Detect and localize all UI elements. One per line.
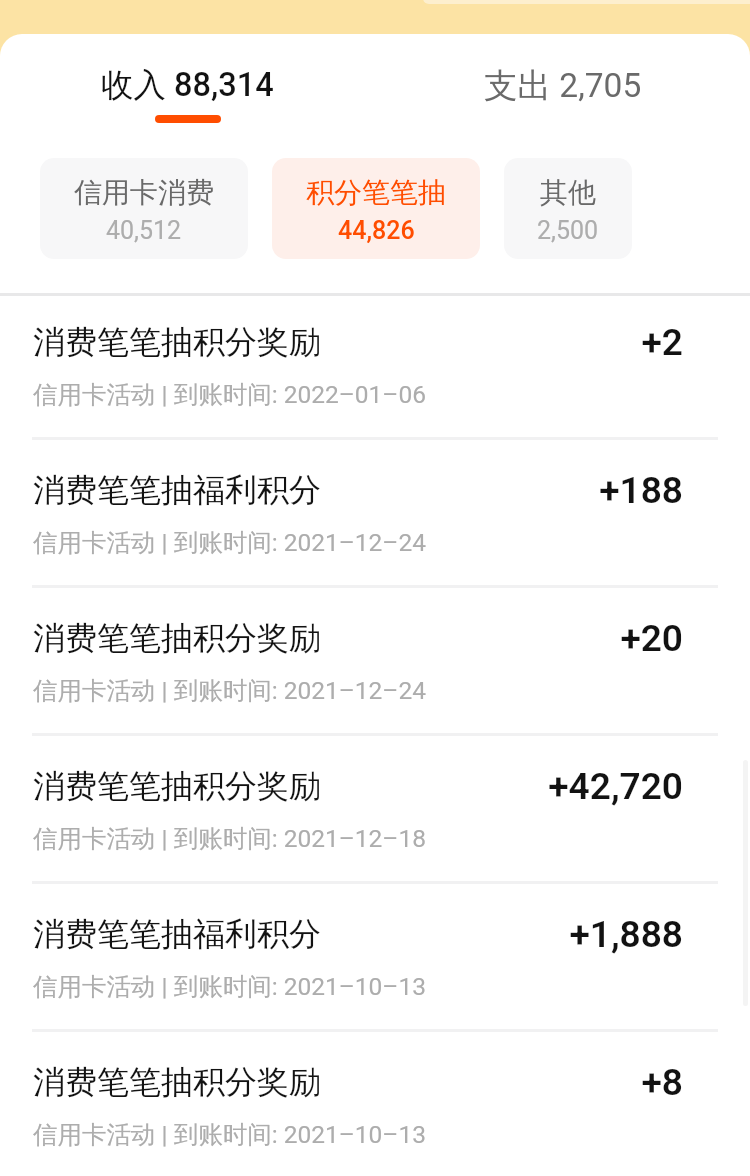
button[interactable]: 积分笔笔抽 [272,158,480,259]
staticText: +42,720 [548,765,683,808]
staticText: 信用卡活动 | 到账时间: 2021–12–24 [33,675,426,706]
staticText: 44,826 [338,216,415,245]
button[interactable]: 消费笔笔抽积分奖励 [0,592,750,740]
staticText: 2,500 [537,216,599,245]
staticText: 信用卡活动 | 到账时间: 2021–10–13 [33,971,426,1002]
staticText: 40,512 [106,216,182,245]
button[interactable]: 消费笔笔抽福利积分 [0,444,750,592]
staticText: 其他 [540,175,596,210]
staticText: 支出 2,705 [484,65,642,107]
staticText: 信用卡活动 | 到账时间: 2021–12–18 [33,823,426,854]
staticText: 信用卡活动 | 到账时间: 2022–01–06 [33,379,426,410]
button[interactable]: 其他 [504,158,632,259]
staticText: 信用卡活动 | 到账时间: 2021–10–13 [33,1119,426,1150]
staticText: +2 [641,321,683,364]
button[interactable]: 消费笔笔抽福利积分 [0,888,750,1036]
staticText: 消费笔笔抽福利积分 [33,914,321,954]
staticText: 收入 88,314 [101,65,274,106]
staticText: 消费笔笔抽积分奖励 [33,766,321,806]
staticText: 信用卡消费 [74,175,214,210]
staticText: +8 [641,1061,683,1104]
staticText: +20 [620,617,683,660]
staticText: 信用卡活动 | 到账时间: 2021–12–24 [33,527,426,558]
button[interactable]: 收入 88,314 [0,34,375,158]
staticText: 消费笔笔抽福利积分 [33,470,321,510]
button[interactable]: 支出 2,705 [375,34,750,158]
button[interactable]: 消费笔笔抽积分奖励 [0,1036,750,1176]
staticText: +188 [599,469,683,512]
staticText: 消费笔笔抽积分奖励 [33,1062,321,1102]
button[interactable]: 消费笔笔抽积分奖励 [0,740,750,888]
staticText: +1,888 [569,913,683,956]
staticText: 积分笔笔抽 [306,175,446,210]
other: Selected tab indicator [155,115,221,123]
staticText: 消费笔笔抽积分奖励 [33,322,321,362]
button[interactable]: 消费笔笔抽积分奖励 [0,296,750,444]
button[interactable]: 信用卡消费 [40,158,248,259]
staticText: 消费笔笔抽积分奖励 [33,618,321,658]
